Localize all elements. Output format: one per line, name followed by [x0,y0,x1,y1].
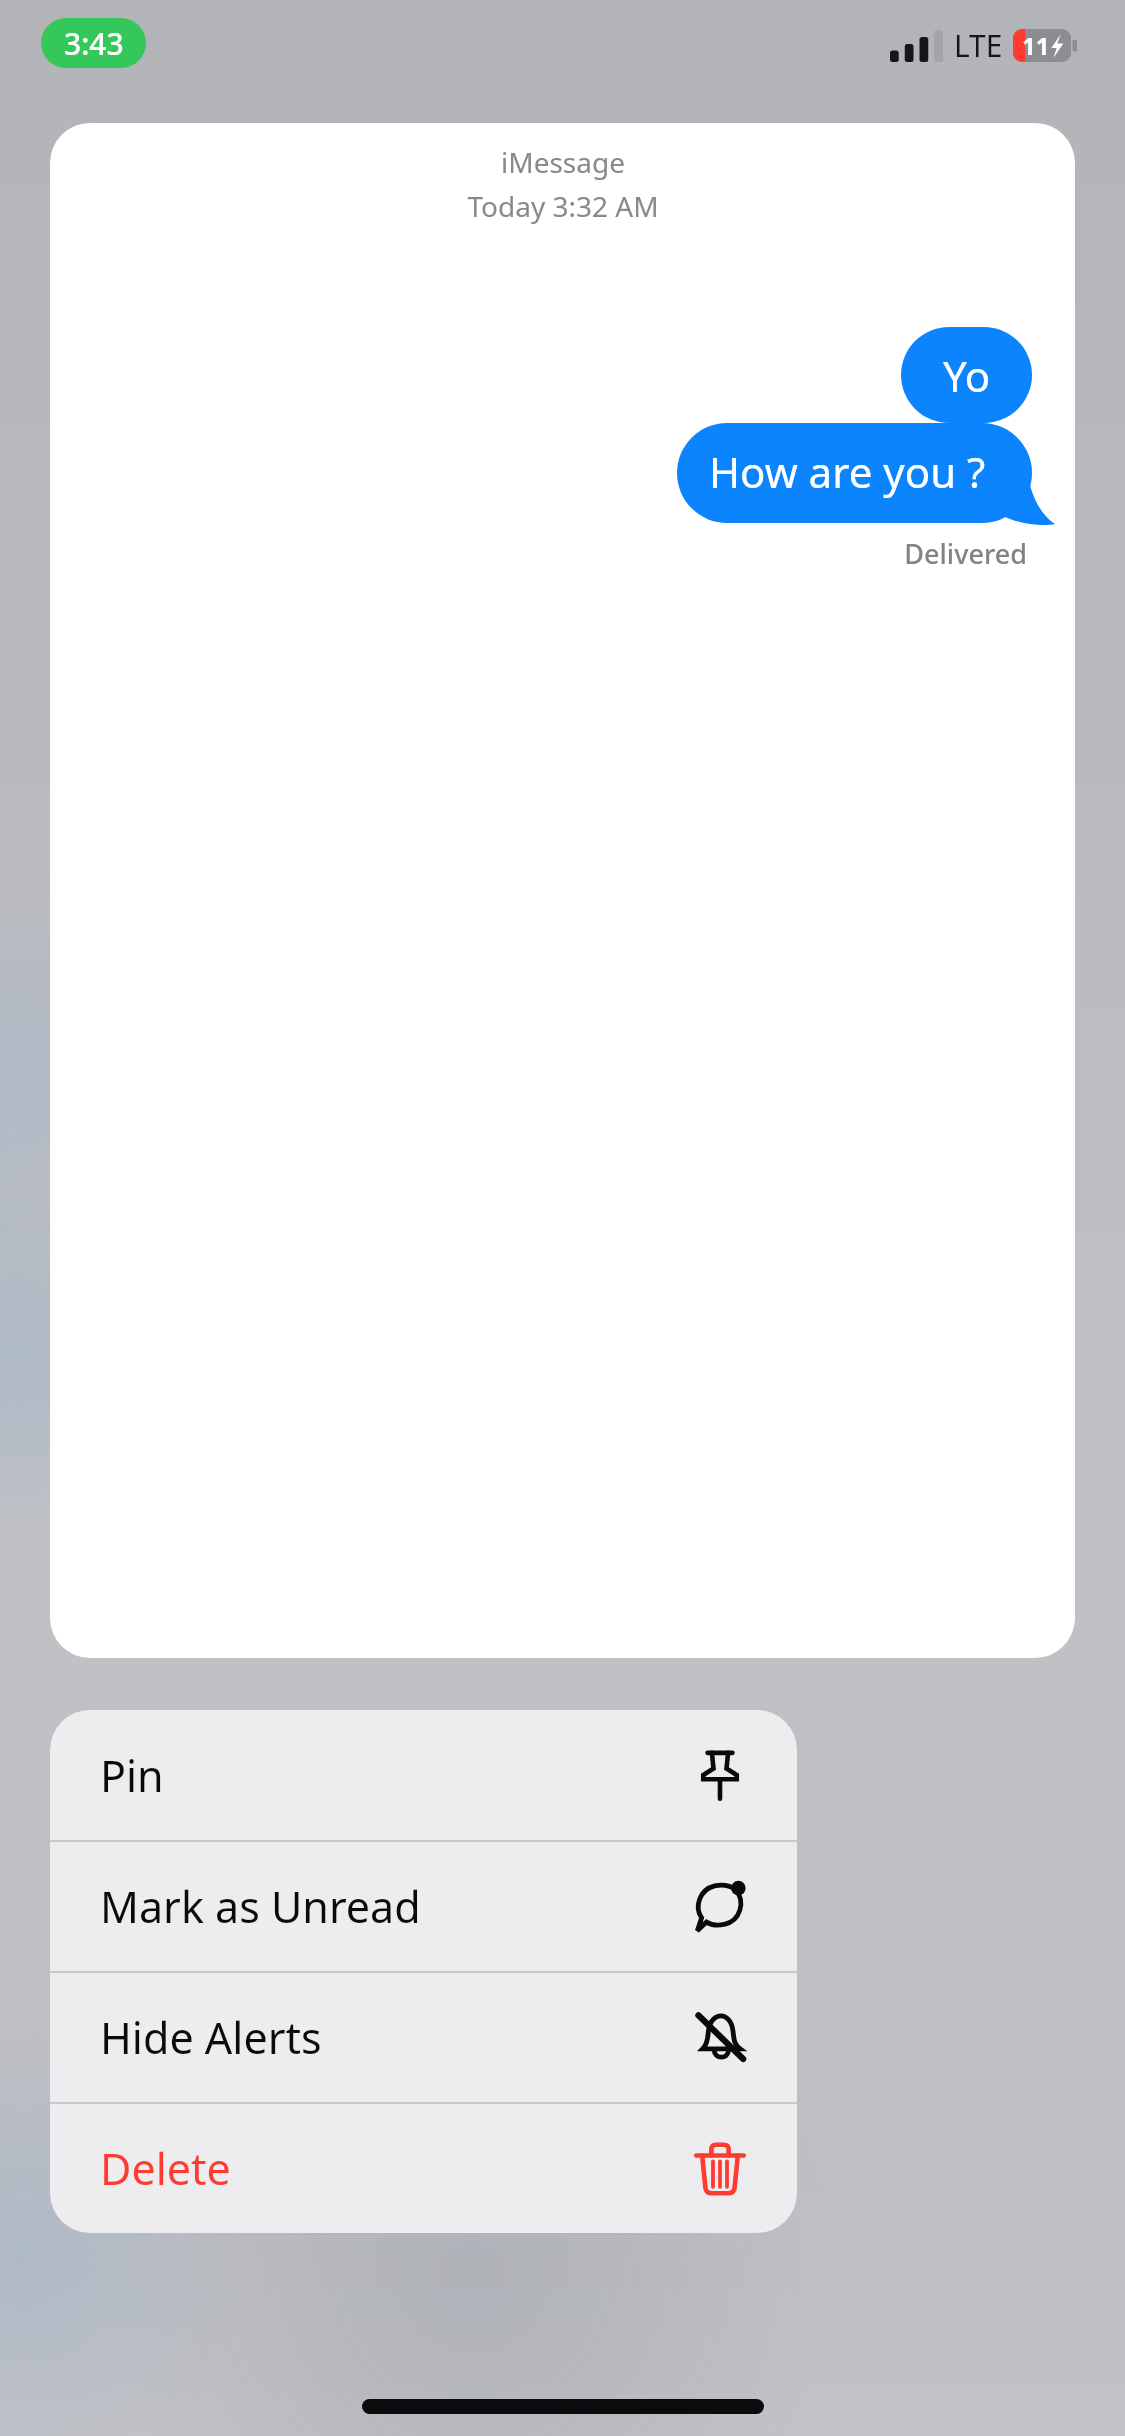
staticText: Mark as Unread [100,1877,421,1936]
staticText: Delivered [530,535,1027,572]
staticText: Pin [100,1746,164,1805]
button[interactable]: Delete [50,2104,797,2233]
button[interactable]: Pin [50,1710,797,1840]
staticText: iMessage [501,143,625,181]
staticText: LTE [954,25,1003,66]
button[interactable]: Yo [901,327,1032,423]
staticText: How are you ? [709,443,986,500]
staticText: Today 3:32 AM [467,187,659,225]
staticText: Delete [100,2139,231,2198]
button[interactable]: Recording indicator, 3:43 [41,18,146,68]
button[interactable]: How are you ? [677,423,1055,523]
staticText: Yo [943,347,991,404]
staticText: 3:43 [64,23,124,64]
button[interactable]: Hide Alerts [50,1973,797,2102]
staticText: Hide Alerts [100,2008,322,2067]
staticText: 11 [1022,29,1050,62]
button[interactable]: Mark as Unread [50,1842,797,1971]
